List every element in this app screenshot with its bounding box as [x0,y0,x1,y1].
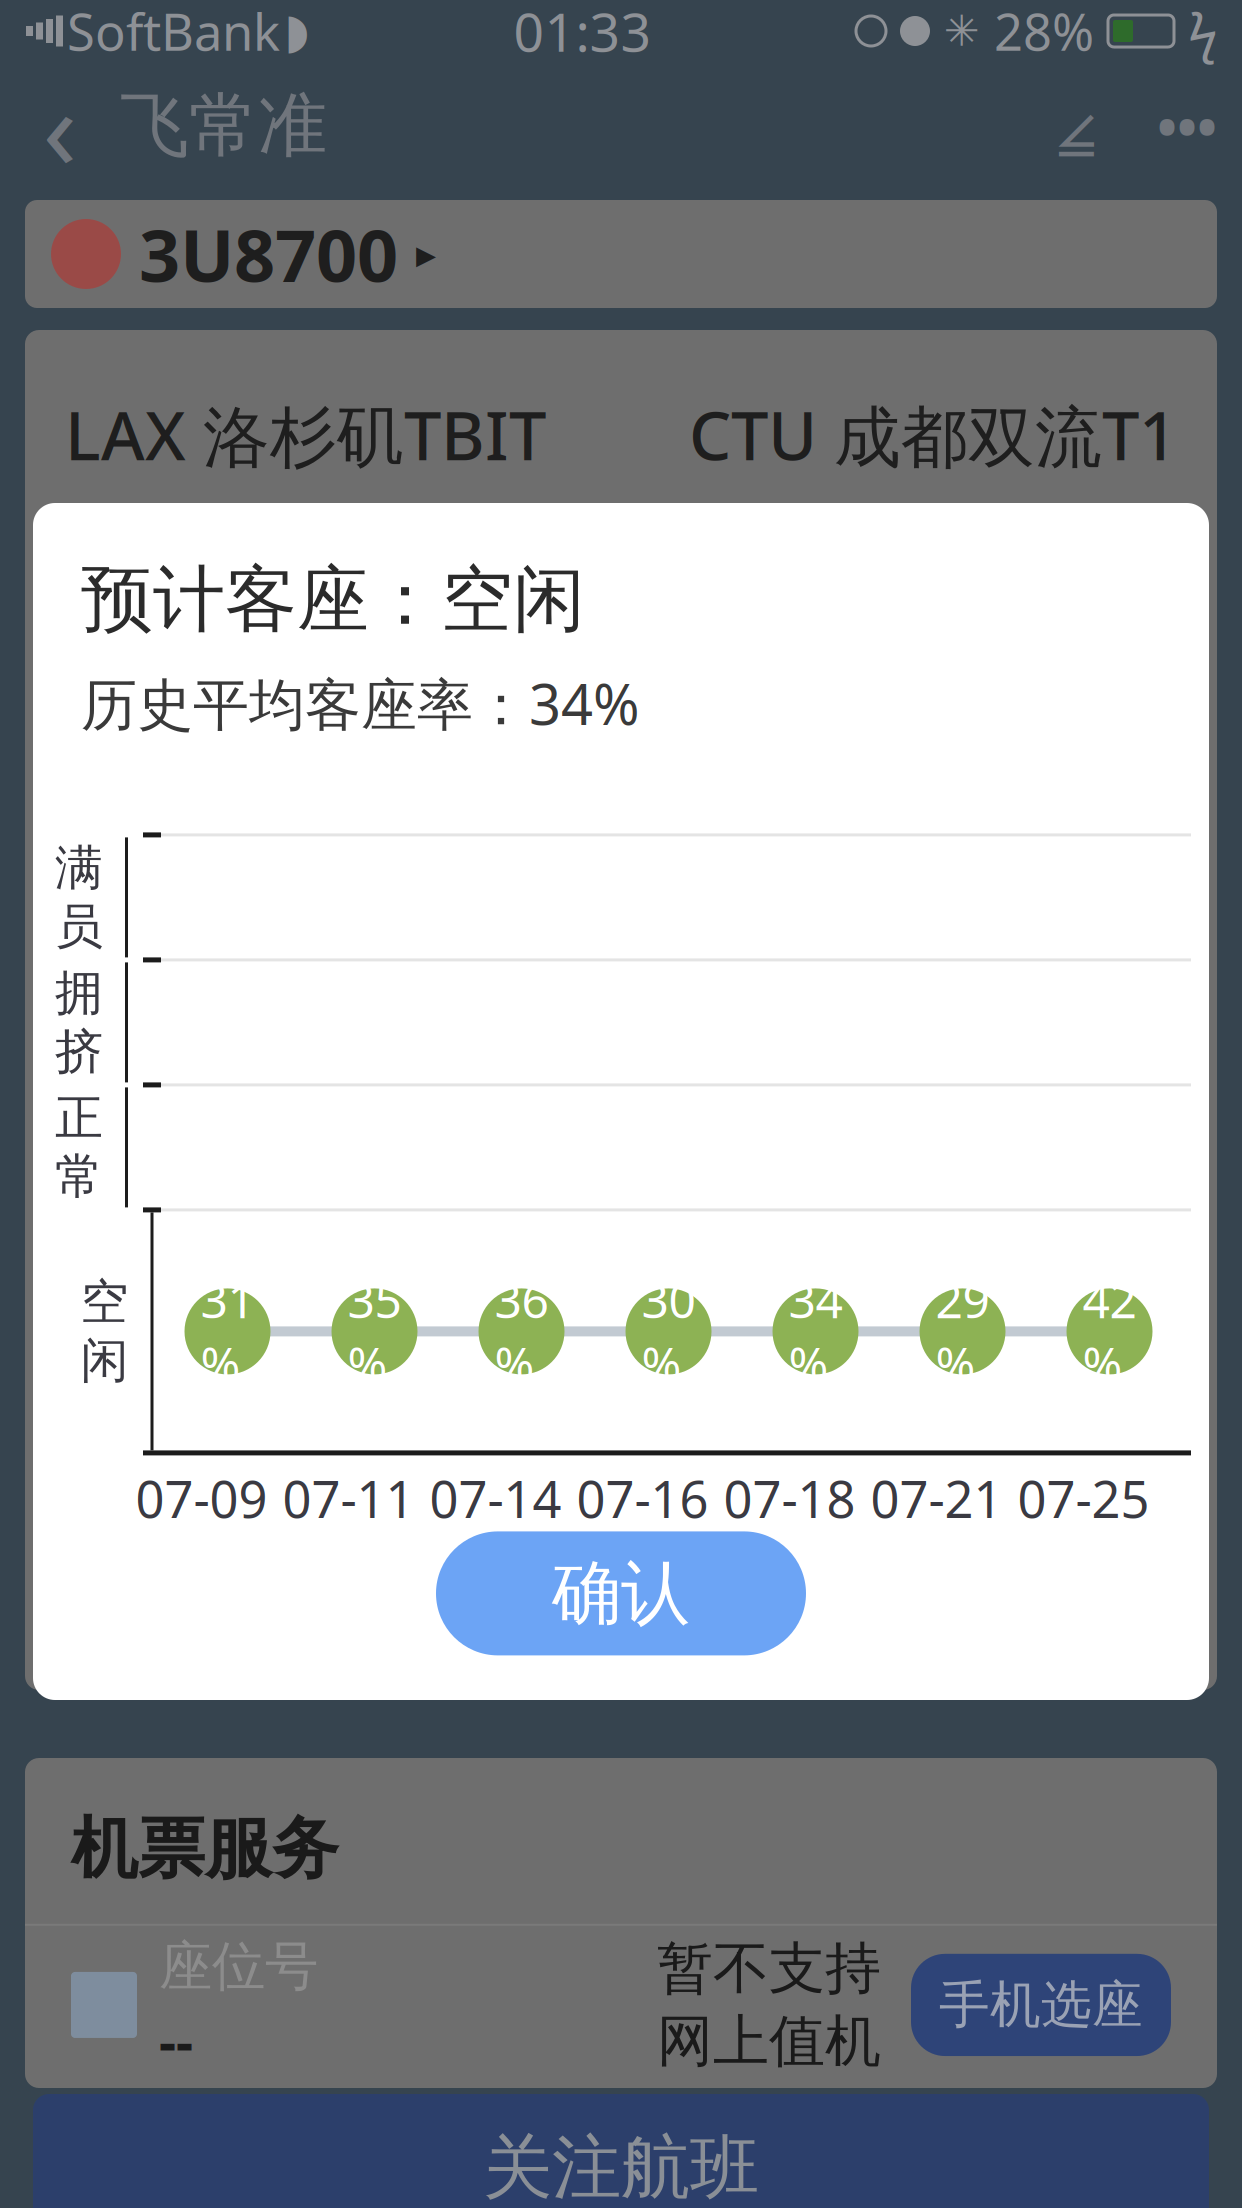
staticText: 31% [200,1268,254,1395]
staticText: ⦤ [1057,92,1097,160]
staticText: 07-18 [723,1465,855,1532]
button[interactable]: More options [1132,62,1242,190]
staticText: 历史平均客座率：34% [81,666,640,740]
staticText: 拥挤 [55,963,103,1081]
staticText: 36% [494,1268,548,1395]
staticText: SoftBank [67,0,280,65]
staticText: 暂不支持 [657,1934,881,2003]
staticText: ••• [1157,91,1217,161]
staticText: ✳ [944,7,980,55]
staticText: 确认 [552,1551,690,1636]
button[interactable]: 飞常准 [120,62,327,190]
staticText: 网上值机 [657,2007,881,2076]
staticText: ‹ [42,52,77,200]
staticText: 35% [347,1268,401,1395]
staticText: 29% [935,1268,989,1395]
button[interactable]: 关注航班 [33,2094,1209,2208]
staticText: ▸ [416,231,436,277]
staticText: 28% [994,0,1094,65]
staticText: ϟ [1188,0,1218,66]
staticText: 手机选座 [939,1974,1143,2036]
button[interactable]: Share [1022,62,1132,190]
staticText: 07-16 [576,1465,708,1532]
staticText: CTU 成都双流T1 [689,390,1177,479]
staticText: 07-11 [282,1465,414,1532]
staticText: 3U8700 [139,206,398,302]
staticText: ◗ [284,4,309,58]
staticText: 07-25 [1017,1465,1149,1532]
staticText: 正常 [55,1088,103,1206]
staticText: LAX 洛杉矶TBIT [65,390,546,479]
staticText: 预计客座：空闲 [81,556,585,644]
staticText: 满员 [55,838,103,956]
button[interactable]: Back [0,62,120,190]
staticText: 07-14 [429,1465,561,1532]
button[interactable]: 3U8700 [25,200,1217,308]
button[interactable]: 手机选座 [911,1954,1171,2056]
staticText: 关注航班 [483,2125,759,2208]
staticText: 座位号 [159,1934,318,1999]
staticText: 飞常准 [120,83,327,169]
staticText: 42% [1082,1268,1136,1395]
button[interactable]: 确认 [436,1531,806,1655]
staticText: 07-09 [135,1465,267,1532]
staticText: 01:33 [513,0,651,66]
staticText: 30% [641,1268,695,1395]
staticText: 07-21 [870,1465,1002,1532]
staticText: 机票服务 [71,1808,339,1890]
staticText: 34% [788,1268,842,1395]
staticText: 空闲 [80,1272,128,1390]
staticText: -- [159,2005,193,2076]
